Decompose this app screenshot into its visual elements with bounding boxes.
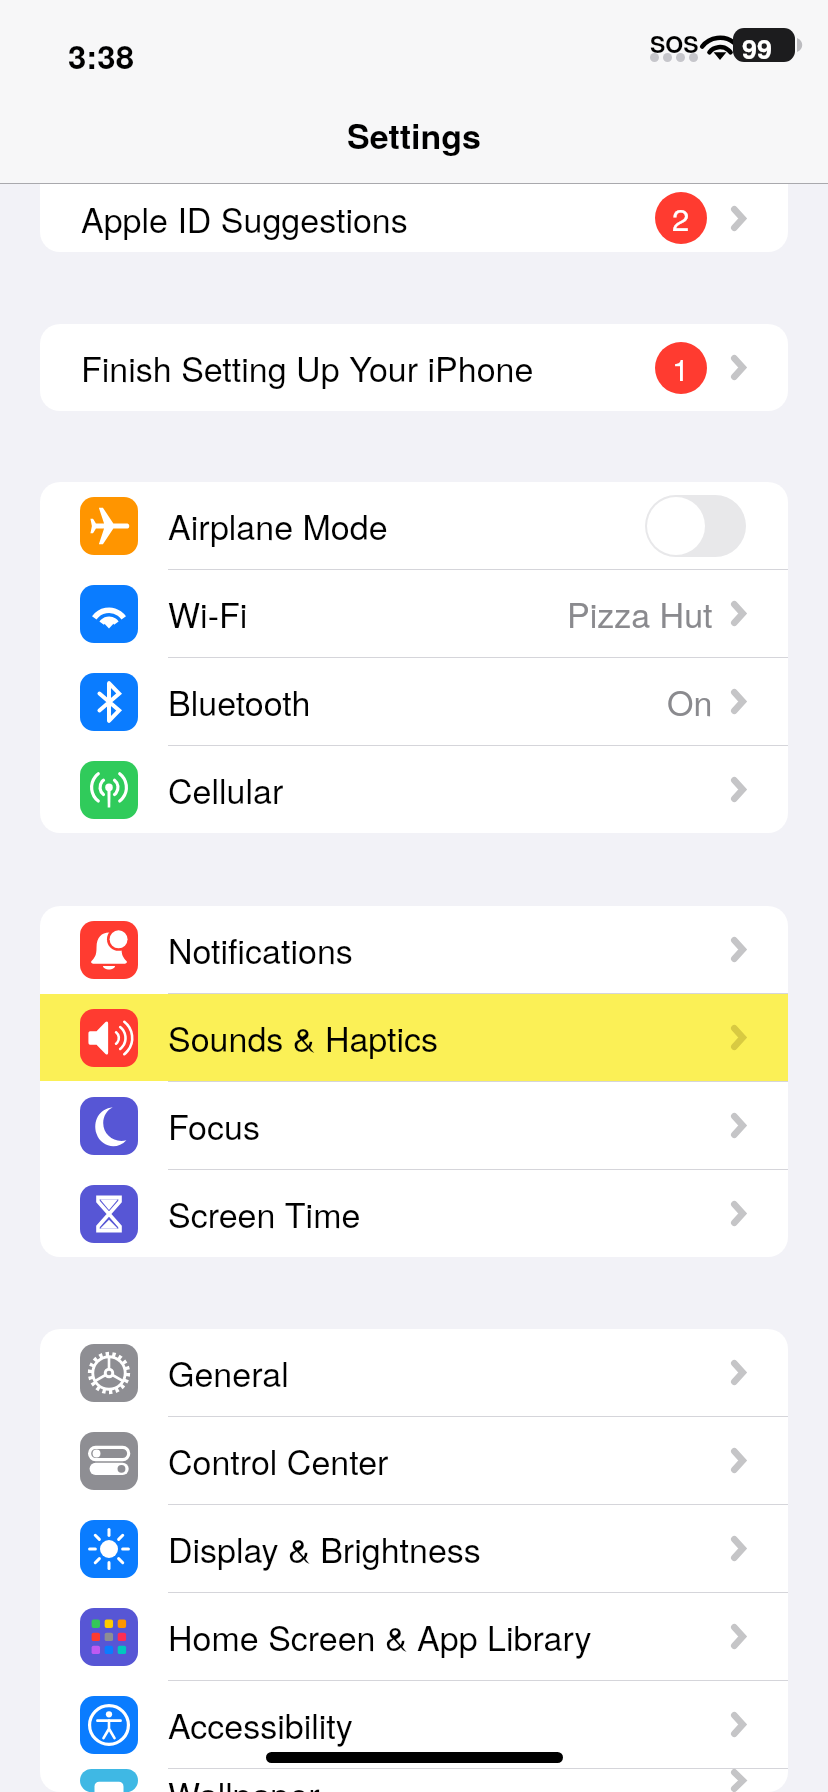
staticText: Apple ID Suggestions (81, 194, 408, 243)
button[interactable]: General (40, 1329, 788, 1416)
staticText: Notifications (168, 925, 353, 974)
button[interactable]: Screen Time (40, 1170, 788, 1257)
staticText: Control Center (168, 1436, 389, 1485)
button[interactable]: Finish Setting Up Your iPhone (40, 324, 788, 411)
staticText: SOS (650, 27, 699, 60)
staticText: On (667, 677, 713, 726)
staticText: General (168, 1348, 289, 1397)
button[interactable]: Focus (40, 1082, 788, 1169)
button[interactable]: Home Screen & App Library (40, 1593, 788, 1680)
button[interactable]: Wallpaper (40, 1769, 788, 1792)
staticText: Sounds & Haptics (168, 1013, 439, 1062)
staticText: 2 (672, 195, 690, 239)
staticText: Pizza Hut (567, 589, 713, 638)
staticText: Focus (168, 1101, 260, 1150)
staticText: Settings (347, 111, 481, 160)
staticText: Home Screen & App Library (168, 1612, 592, 1661)
button[interactable]: Notifications (40, 906, 788, 993)
button[interactable]: Control Center (40, 1417, 788, 1504)
button[interactable]: Apple ID Suggestions (40, 184, 788, 252)
button[interactable]: Sounds & Haptics (40, 994, 788, 1081)
button[interactable]: Display & Brightness (40, 1505, 788, 1592)
staticText: 99 (742, 29, 773, 68)
button[interactable]: Bluetooth (40, 658, 788, 745)
button[interactable]: Cellular (40, 746, 788, 833)
staticText: Accessibility (168, 1700, 353, 1749)
staticText: Airplane Mode (168, 501, 388, 550)
staticText: Display & Brightness (168, 1524, 481, 1573)
staticText: Bluetooth (168, 677, 311, 726)
staticText: 1 (672, 345, 690, 389)
button[interactable]: Wi-Fi (40, 570, 788, 657)
button[interactable]: Airplane Mode switch (645, 495, 746, 557)
button[interactable]: Airplane Mode (40, 482, 788, 569)
staticText: Wallpaper (168, 1769, 320, 1792)
button[interactable]: Accessibility (40, 1681, 788, 1768)
staticText: 3:38 (68, 32, 135, 79)
staticText: Finish Setting Up Your iPhone (81, 343, 534, 392)
staticText: Screen Time (168, 1189, 361, 1238)
staticText: Wi-Fi (168, 589, 248, 638)
staticText: Cellular (168, 765, 284, 814)
